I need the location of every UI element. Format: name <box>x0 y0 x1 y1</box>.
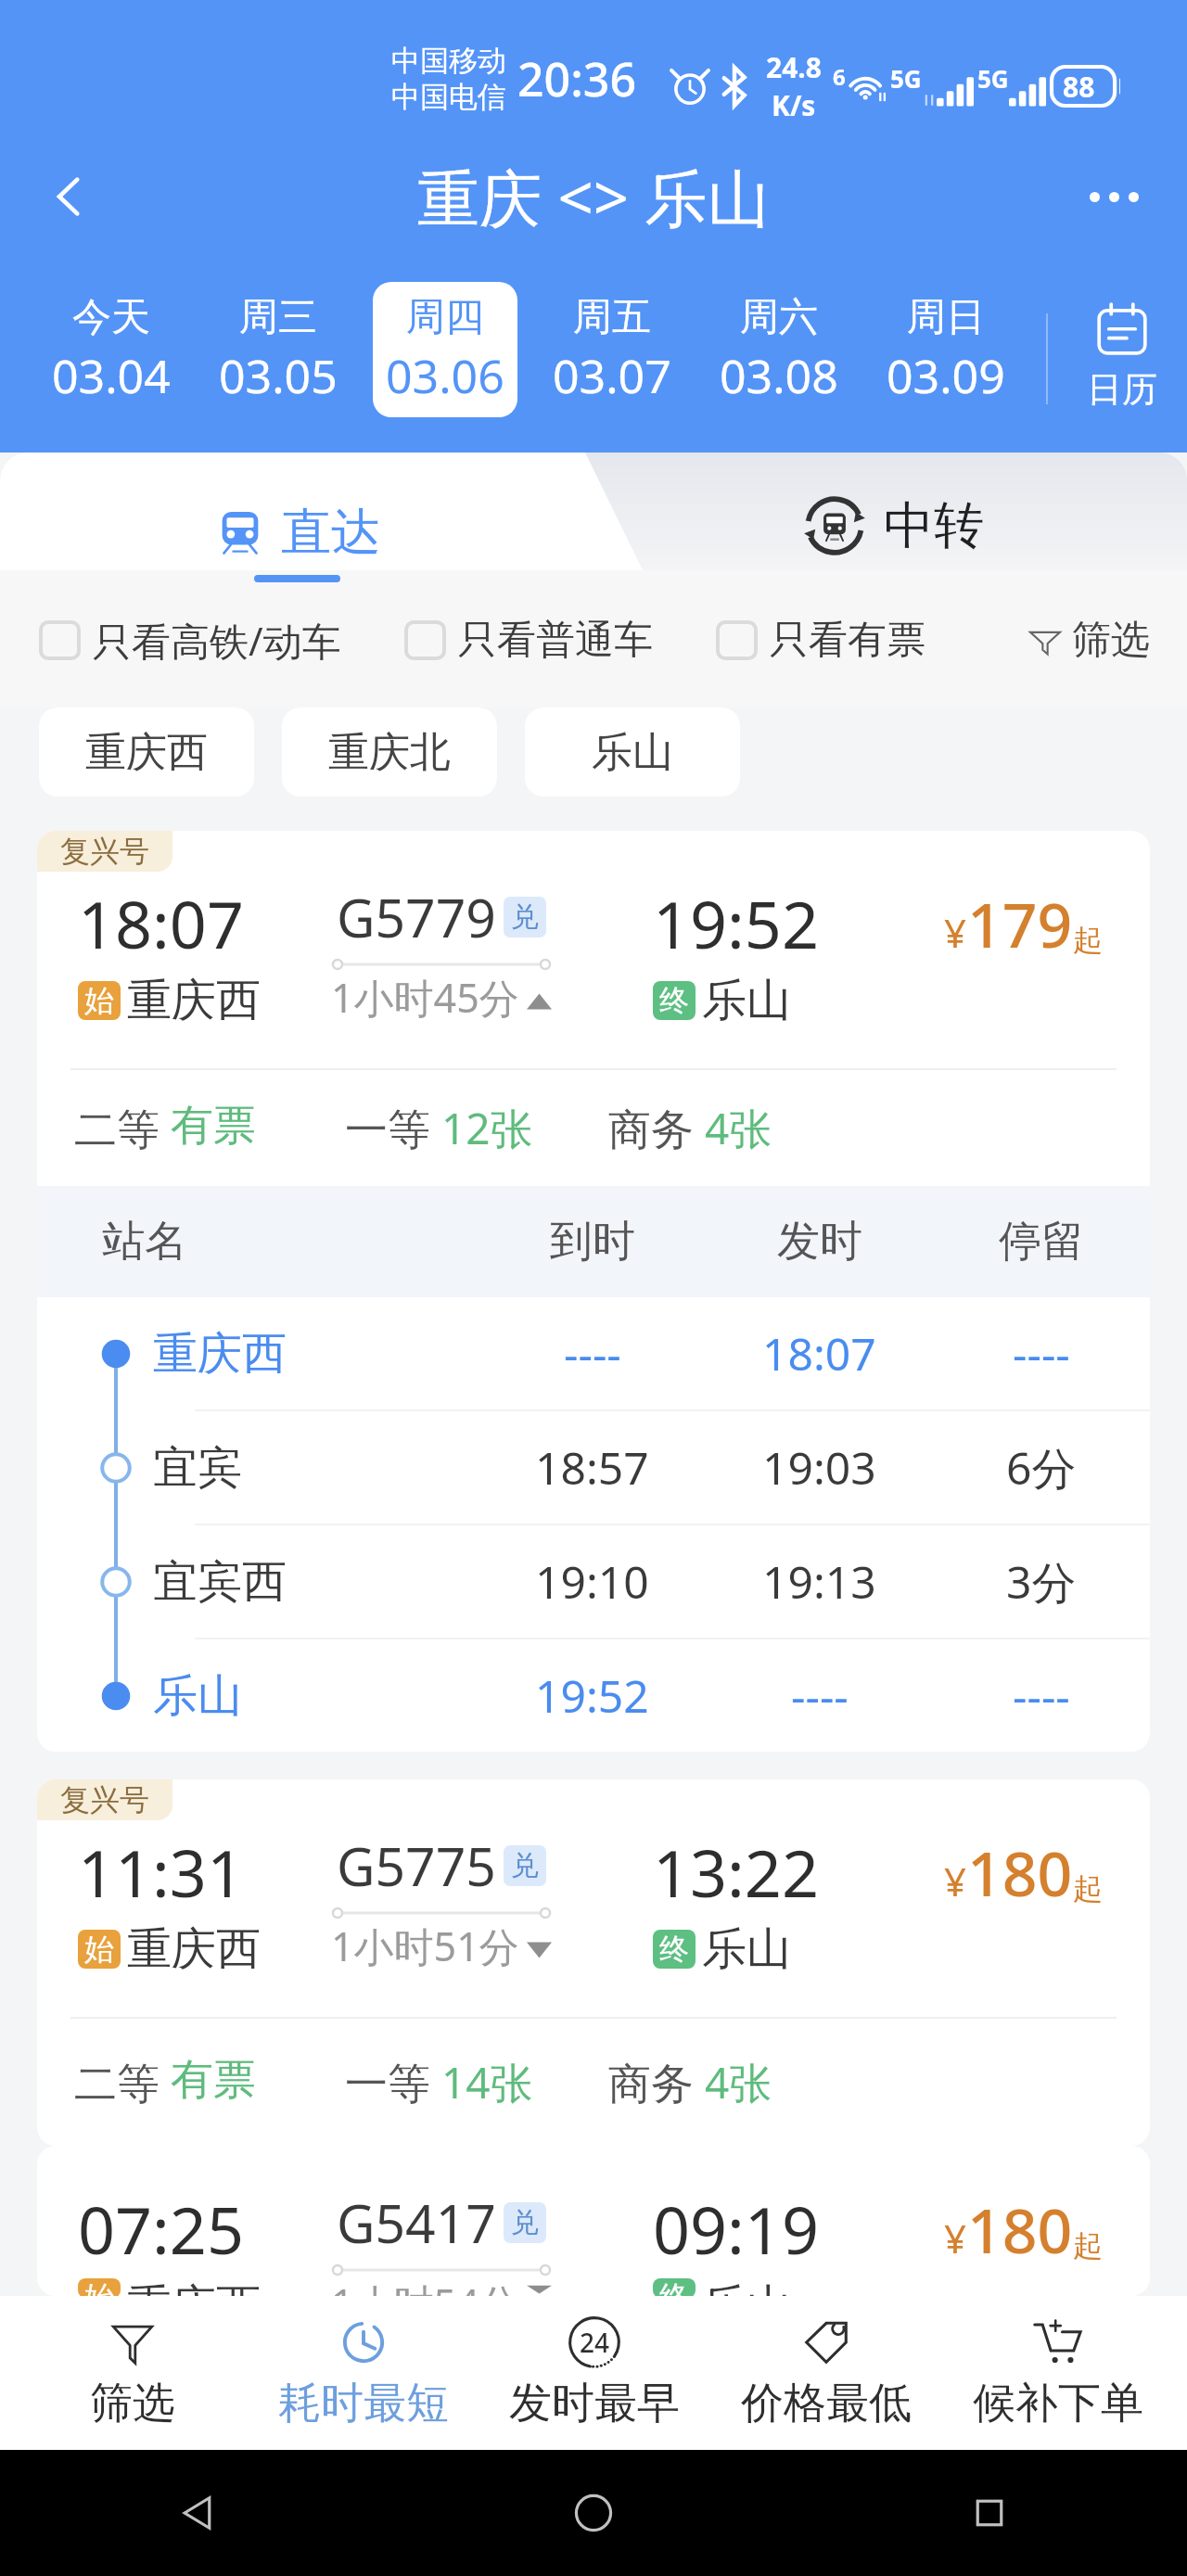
staticText: 重庆西 <box>127 973 261 1028</box>
staticText: 只看有票 <box>770 616 925 665</box>
staticText: 乐山 <box>702 1921 791 1977</box>
staticText: 有票 <box>171 2053 256 2107</box>
button[interactable]: 乐山 <box>525 708 740 797</box>
staticText: 今天 <box>72 293 150 342</box>
staticText: K/s <box>772 86 816 124</box>
staticText: 停留 <box>999 1215 1084 1269</box>
button[interactable]: 24 <box>479 2296 710 2450</box>
button[interactable]: 耗时最短 <box>248 2296 479 2450</box>
button[interactable]: 周四 <box>373 282 517 417</box>
button[interactable]: 返回 <box>28 155 111 238</box>
staticText: 筛选 <box>90 2377 175 2430</box>
staticText: 11:31 <box>78 1828 244 1916</box>
staticText: 价格最低 <box>741 2377 912 2430</box>
staticText: 乐山 <box>702 2278 791 2296</box>
staticText: 筛选 <box>1072 616 1150 665</box>
staticText: 19:03 <box>762 1437 876 1498</box>
staticText: 发时 <box>777 1215 862 1269</box>
staticText: 终 <box>659 1931 689 1968</box>
staticText: 3分 <box>1006 1551 1077 1613</box>
staticText: 24.8 <box>766 48 822 86</box>
staticText: ¥ <box>944 2212 967 2264</box>
staticText: ¥ <box>944 906 967 959</box>
button[interactable]: 更多 <box>1072 155 1155 238</box>
button[interactable]: 重庆北 <box>282 708 497 797</box>
staticText: 19:13 <box>762 1551 876 1612</box>
staticText: 只看高铁/动车 <box>93 614 341 667</box>
staticText: 终 <box>659 982 689 1019</box>
staticText: 周六 <box>740 293 818 342</box>
staticText: 重庆西 <box>127 1921 261 1977</box>
button[interactable]: 复兴号 <box>37 831 1150 1752</box>
staticText: G5417 <box>337 2187 496 2259</box>
staticText: 周四 <box>406 293 484 342</box>
staticText: 12张 <box>441 1099 533 1157</box>
staticText: 13:22 <box>653 1828 819 1916</box>
button[interactable]: 只看普通车 <box>404 616 653 665</box>
staticText: 6 <box>833 61 846 92</box>
staticText: 起 <box>1073 2227 1103 2264</box>
staticText: ---- <box>1013 1665 1070 1726</box>
button[interactable]: 筛选 <box>1027 616 1150 665</box>
staticText: 周三 <box>239 293 317 342</box>
button[interactable]: 周六 <box>707 282 851 417</box>
staticText: 24 <box>580 2325 610 2360</box>
staticText: 4张 <box>705 2053 772 2111</box>
staticText: 03.04 <box>52 344 171 407</box>
button[interactable]: 直达 <box>220 501 381 564</box>
staticText: 乐山 <box>153 1668 242 1724</box>
staticText: 4张 <box>705 1099 772 1157</box>
staticText: ---- <box>791 1665 849 1726</box>
button[interactable]: 候补下单 <box>942 2296 1174 2450</box>
staticText: ---- <box>564 1323 621 1384</box>
staticText: 终 <box>659 2278 689 2296</box>
button[interactable]: 只看有票 <box>716 616 925 665</box>
staticText: 180 <box>967 2187 1073 2271</box>
staticText: 19:52 <box>653 879 819 967</box>
staticText: 179 <box>967 882 1073 965</box>
staticText: 只看普通车 <box>458 616 653 665</box>
staticText: 宜宾西 <box>153 1554 287 1610</box>
button[interactable]: Recents <box>948 2471 1031 2555</box>
staticText: 二等 <box>74 1099 171 1157</box>
staticText: 有票 <box>171 1099 256 1153</box>
button[interactable]: 周三 <box>206 282 351 417</box>
staticText: 18:07 <box>78 879 244 967</box>
staticText: 03.08 <box>720 344 838 407</box>
staticText: 5G <box>890 62 922 95</box>
staticText: 19:52 <box>535 1665 649 1726</box>
staticText: 18:07 <box>762 1323 876 1384</box>
button[interactable]: 周五 <box>540 282 684 417</box>
button[interactable]: 重庆西 <box>39 708 254 797</box>
button[interactable]: 筛选 <box>17 2296 248 2450</box>
button[interactable]: Home <box>552 2471 635 2555</box>
button[interactable]: Back <box>156 2471 239 2555</box>
staticText: 14张 <box>441 2053 533 2111</box>
staticText: 1小时51分 <box>331 1919 519 1973</box>
staticText: 站名 <box>102 1215 187 1269</box>
staticText: 03.09 <box>887 344 1005 407</box>
staticText: 重庆西 <box>153 1326 287 1382</box>
button[interactable]: 今天 <box>39 282 184 417</box>
button[interactable]: 中转 <box>802 494 984 557</box>
button[interactable]: 复兴号 <box>37 1779 1150 2146</box>
staticText: 始 <box>84 1931 114 1968</box>
staticText: ¥ <box>944 1855 967 1907</box>
staticText: 重庆北 <box>328 727 451 778</box>
button[interactable]: 日历 <box>1057 280 1187 440</box>
button[interactable]: 周日 <box>874 282 1018 417</box>
staticText: 兑 <box>511 2205 539 2240</box>
staticText: 重庆西 <box>127 2278 261 2296</box>
staticText: 起 <box>1073 922 1103 959</box>
staticText: 88 <box>1063 68 1095 106</box>
staticText: 乐山 <box>702 973 791 1028</box>
staticText: 1小时45分 <box>331 970 519 1025</box>
button[interactable]: 07:25 <box>37 2146 1150 2296</box>
button[interactable]: 价格最低 <box>710 2296 942 2450</box>
button[interactable]: 只看高铁/动车 <box>39 614 341 667</box>
staticText: ---- <box>1013 1323 1070 1384</box>
staticText: 到时 <box>550 1215 635 1269</box>
staticText: 中国电信 <box>391 79 506 115</box>
staticText: 二等 <box>74 2053 171 2111</box>
staticText: 重庆 <> 乐山 <box>417 154 770 239</box>
